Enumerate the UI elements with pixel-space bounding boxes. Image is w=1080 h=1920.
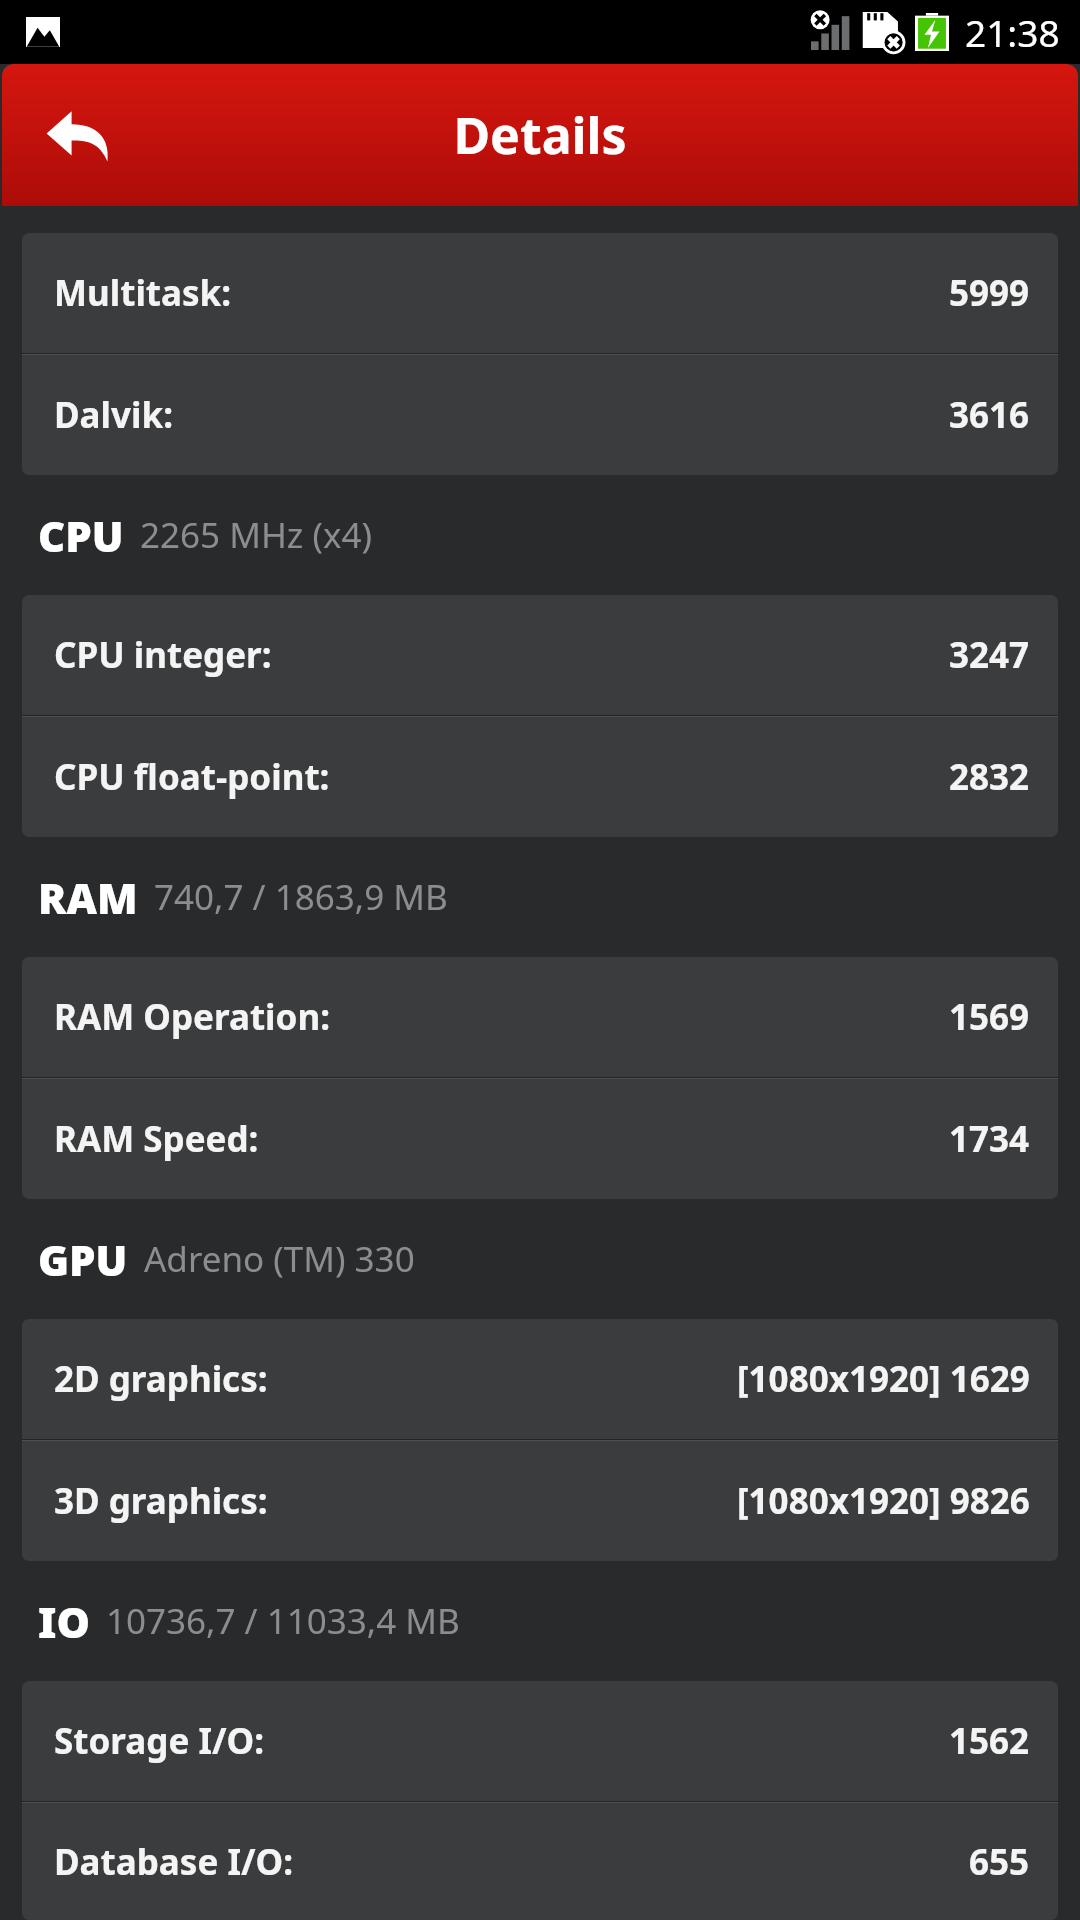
staticText: Details	[453, 101, 627, 169]
staticText: 3247	[949, 631, 1030, 679]
staticText: RAM	[38, 869, 138, 926]
button[interactable]: Storage I/O:	[22, 1681, 1058, 1801]
staticText: 2832	[949, 753, 1030, 801]
staticText: 1562	[949, 1717, 1030, 1765]
staticText: CPU	[38, 507, 124, 564]
staticText: CPU integer:	[54, 631, 272, 679]
staticText: RAM Operation:	[54, 993, 331, 1041]
button[interactable]: 3D graphics:	[22, 1441, 1058, 1561]
staticText: 3616	[949, 391, 1030, 439]
button[interactable]: Database I/O:	[22, 1803, 1058, 1920]
staticText: 5999	[949, 269, 1030, 317]
staticText: Dalvik:	[54, 391, 174, 439]
staticText: 2D graphics:	[54, 1355, 268, 1403]
staticText: 1734	[949, 1115, 1030, 1163]
staticText: Database I/O:	[54, 1838, 294, 1886]
staticText: GPU	[38, 1231, 128, 1288]
staticText: Multitask:	[54, 269, 232, 317]
button[interactable]: CPU float-point:	[22, 717, 1058, 837]
button[interactable]: Back	[38, 95, 118, 175]
staticText: CPU float-point:	[54, 753, 330, 801]
staticText: 2265 MHz (x4)	[140, 511, 372, 559]
button[interactable]: RAM Speed:	[22, 1079, 1058, 1199]
staticText: 655	[969, 1838, 1030, 1886]
staticText: 10736,7 / 11033,4 MB	[106, 1597, 460, 1645]
staticText: RAM Speed:	[54, 1115, 259, 1163]
staticText: 21:38	[965, 7, 1060, 57]
staticText: Storage I/O:	[54, 1717, 265, 1765]
button[interactable]: Multitask:	[22, 233, 1058, 353]
staticText: IO	[38, 1593, 90, 1650]
staticText: [1080x1920] 1629	[737, 1355, 1030, 1403]
button[interactable]: 2D graphics:	[22, 1319, 1058, 1439]
button[interactable]: RAM Operation:	[22, 957, 1058, 1077]
button[interactable]: Dalvik:	[22, 355, 1058, 475]
staticText: 740,7 / 1863,9 MB	[154, 873, 448, 921]
staticText: [1080x1920] 9826	[737, 1477, 1030, 1525]
button[interactable]: CPU integer:	[22, 595, 1058, 715]
staticText: 3D graphics:	[54, 1477, 268, 1525]
staticText: Adreno (TM) 330	[144, 1235, 415, 1283]
staticText: 1569	[949, 993, 1030, 1041]
